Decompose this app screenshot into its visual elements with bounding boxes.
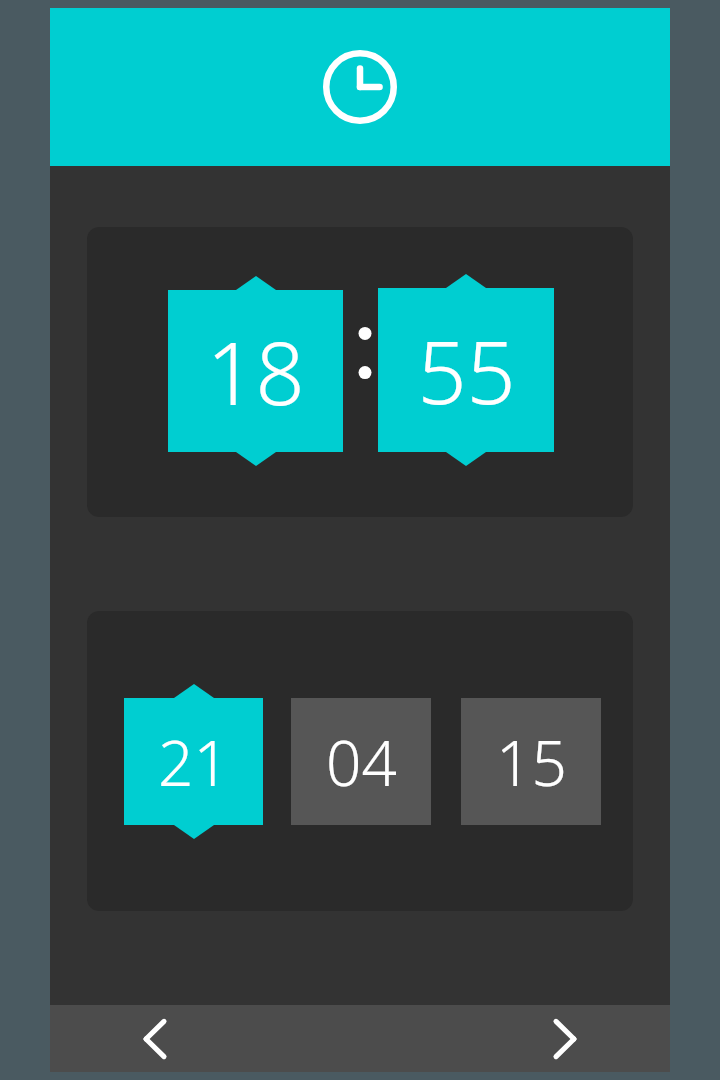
button[interactable]: 21 (124, 698, 263, 825)
staticText: 21 (158, 720, 229, 804)
button[interactable]: Next (460, 1005, 670, 1072)
button[interactable]: Increase day (124, 678, 263, 698)
button[interactable]: 55 (378, 288, 554, 452)
button[interactable]: Clock (50, 8, 670, 166)
staticText: 55 (417, 312, 516, 429)
staticText: 15 (496, 720, 567, 804)
button[interactable]: 04 (291, 698, 431, 825)
button[interactable]: Increase hour (168, 270, 343, 290)
button[interactable]: Previous (50, 1005, 260, 1072)
staticText: 04 (326, 720, 397, 804)
button[interactable]: Decrease day (124, 825, 263, 847)
staticText: 18 (206, 313, 305, 430)
button[interactable]: Increase minute (378, 268, 554, 288)
button[interactable]: 18 (168, 290, 343, 452)
button[interactable]: Decrease minute (378, 452, 554, 474)
button[interactable]: 15 (461, 698, 601, 825)
button[interactable]: Decrease hour (168, 452, 343, 474)
